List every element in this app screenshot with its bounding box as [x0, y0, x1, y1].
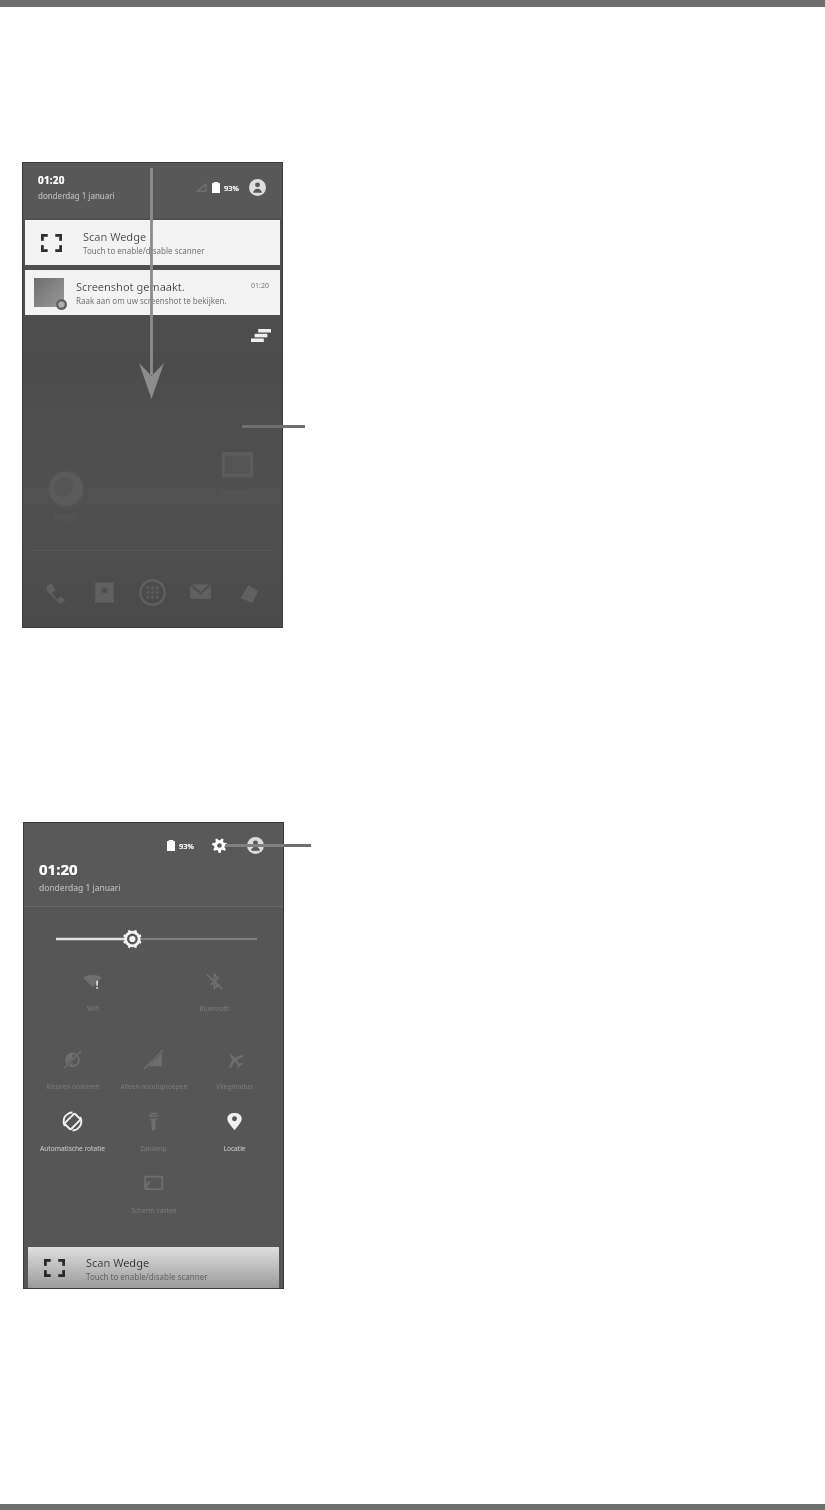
staticText: Locatie	[223, 1144, 246, 1153]
button[interactable]: All apps	[138, 578, 167, 607]
button[interactable]: Dismiss all notifications	[251, 329, 271, 342]
staticText: donderdag 1 januari	[38, 190, 115, 201]
staticText: Alleen noodoproepen	[120, 1082, 188, 1091]
button[interactable]: Scan Wedge	[25, 220, 280, 265]
staticText: Vliegmodus	[216, 1082, 253, 1091]
button[interactable]: Messaging	[186, 578, 215, 607]
staticText: Wifi	[87, 1004, 99, 1013]
button[interactable]: Screenshot gemaakt.	[25, 270, 280, 315]
staticText: 93%	[224, 183, 239, 193]
button[interactable]: Scherm casten	[113, 1174, 194, 1232]
button[interactable]: User	[247, 837, 264, 854]
button[interactable]: Automatische rotatie	[32, 1112, 113, 1170]
staticText: Touch to enable/disable scanner	[86, 1271, 208, 1282]
staticText: Touch to enable/disable scanner	[83, 245, 205, 256]
button[interactable]: Vliegmodus	[194, 1050, 275, 1108]
staticText: Raak aan om uw screenshot te bekijken.	[76, 295, 227, 306]
staticText: Bluetooth	[199, 1004, 230, 1013]
button[interactable]: User	[249, 179, 266, 196]
staticText: Zaklamp	[140, 1144, 167, 1153]
button[interactable]: Alleen noodoproepen	[113, 1050, 194, 1108]
button[interactable]: Wifi	[32, 972, 153, 1030]
staticText: 01:20	[39, 859, 78, 879]
staticText: Scan Wedge	[86, 1255, 150, 1270]
button[interactable]: Settings	[212, 838, 227, 853]
button[interactable]: Zaklamp	[113, 1112, 194, 1170]
button[interactable]: Camera	[235, 578, 264, 607]
button[interactable]: Kleuren omkeren	[32, 1050, 113, 1108]
staticText: 01:20	[38, 173, 65, 187]
staticText: 93%	[179, 841, 194, 851]
button[interactable]: Locatie	[194, 1112, 275, 1170]
staticText: Automatische rotatie	[40, 1144, 105, 1153]
staticText: Scherm casten	[131, 1206, 177, 1215]
button[interactable]: Phone	[41, 578, 70, 607]
button[interactable]: Scan Wedge	[28, 1247, 279, 1289]
staticText: Screenshot gemaakt.	[76, 279, 185, 294]
staticText: Scan Wedge	[83, 229, 147, 244]
button[interactable]: Bluetooth	[153, 972, 275, 1030]
staticText: 01:20	[251, 281, 269, 291]
staticText: donderdag 1 januari	[39, 882, 121, 894]
staticText: Kleuren omkeren	[46, 1082, 100, 1091]
button[interactable]: Contacts	[90, 578, 119, 607]
